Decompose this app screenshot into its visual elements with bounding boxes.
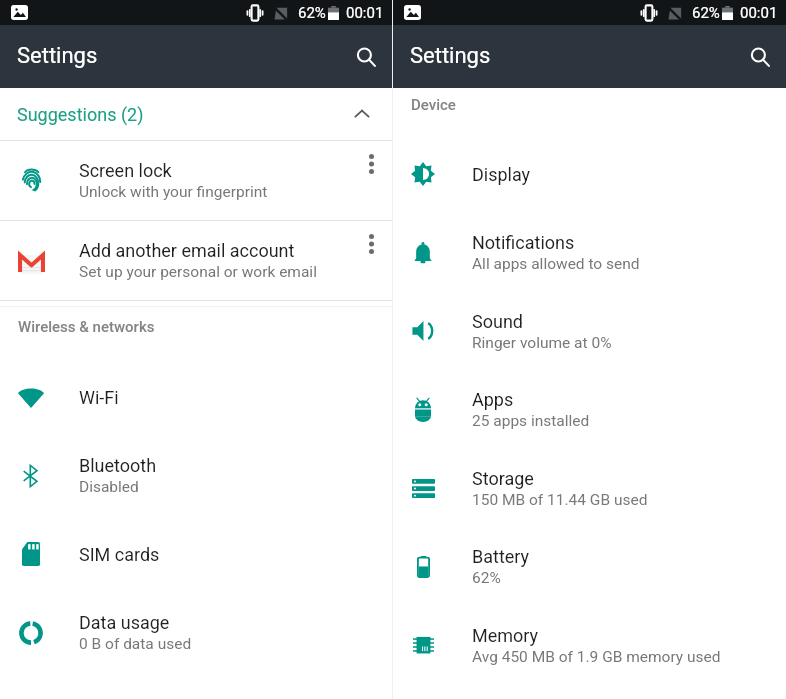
button[interactable]: Apps [393,370,786,449]
button[interactable]: More options [351,221,392,300]
staticText: 25 apps installed [472,412,590,430]
button[interactable]: Suggestions (2) [0,88,392,140]
staticText: All apps allowed to send [472,255,640,273]
button[interactable]: Screen lock [0,141,392,220]
staticText: Disabled [79,478,139,496]
staticText: 00:01 [740,4,778,22]
staticText: Screen lock [79,160,172,181]
button[interactable]: Add another email account [0,221,392,300]
button[interactable]: Sound [393,292,786,370]
staticText: SIM cards [79,544,160,565]
button[interactable]: Storage [393,449,786,527]
button[interactable]: Battery [393,527,786,606]
staticText: Data usage [79,612,170,633]
staticText: Notifications [472,232,575,253]
staticText: Settings [410,43,491,69]
staticText: Settings [17,43,98,69]
staticText: Unlock with your fingerprint [79,183,268,201]
button[interactable]: Bluetooth [0,436,392,515]
staticText: Suggestions (2) [17,104,144,125]
staticText: Apps [472,389,514,410]
button[interactable]: Collapse suggestions [348,100,376,128]
button[interactable]: Wi-Fi [0,358,392,436]
button[interactable]: More options [351,141,392,220]
staticText: 62% [692,4,720,22]
staticText: Set up your personal or work email [79,263,317,281]
staticText: 62% [472,569,501,587]
staticText: Sound [472,311,523,332]
staticText: Battery [472,546,530,567]
staticText: Display [472,164,531,185]
button[interactable]: Search [346,37,386,77]
staticText: 0 B of data used [79,635,192,653]
staticText: Memory [472,625,539,646]
button[interactable]: SIM cards [0,515,392,593]
staticText: Device [411,96,456,114]
staticText: 62% [298,4,326,22]
staticText: Ringer volume at 0% [472,334,612,352]
staticText: Avg 450 MB of 1.9 GB memory used [472,648,721,666]
staticText: 150 MB of 11.44 GB used [472,491,648,509]
button[interactable]: Display [393,135,786,213]
staticText: 00:01 [346,4,384,22]
staticText: Wi-Fi [79,387,119,408]
button[interactable]: Data usage [0,593,392,672]
button[interactable]: Notifications [393,213,786,292]
staticText: Add another email account [79,240,295,261]
button[interactable]: Memory [393,606,786,684]
staticText: Storage [472,468,534,489]
button[interactable]: Search [740,37,780,77]
staticText: Wireless & networks [18,318,155,336]
staticText: Bluetooth [79,455,157,476]
